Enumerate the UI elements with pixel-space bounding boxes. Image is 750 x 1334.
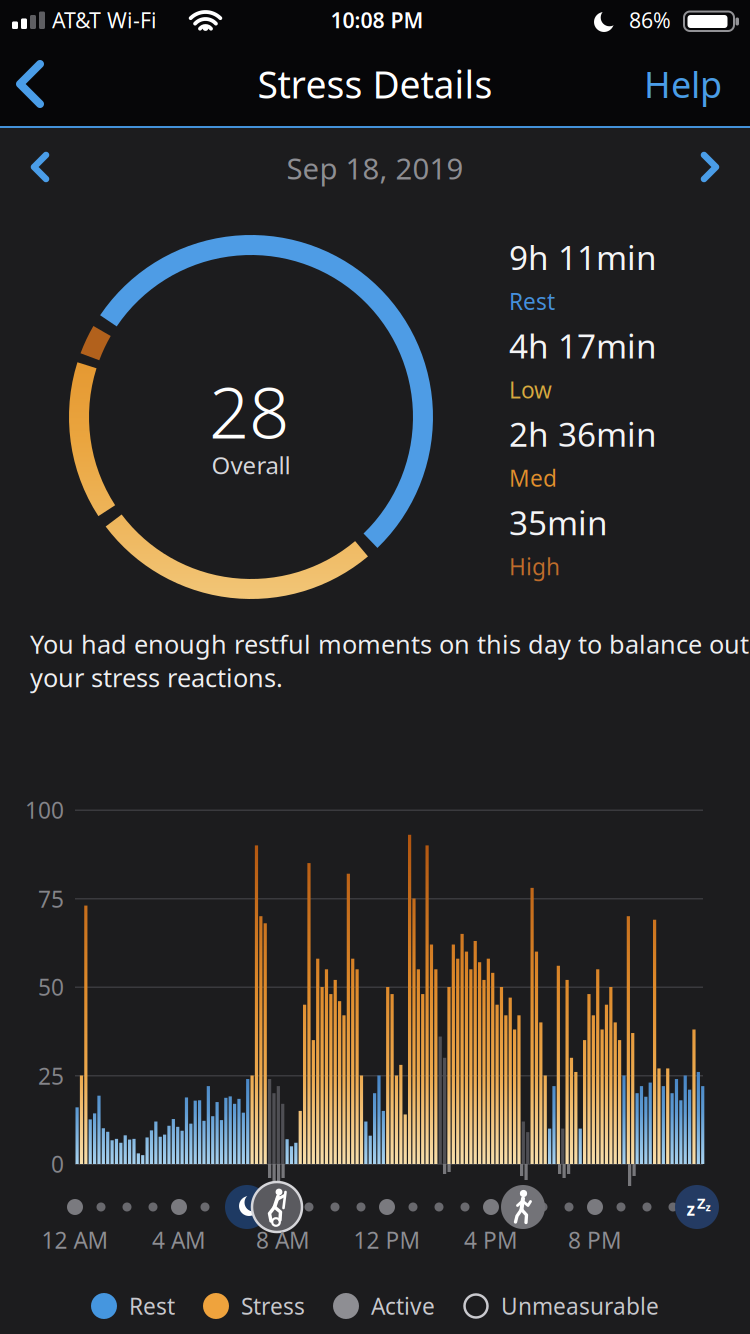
staticText: z xyxy=(705,1200,710,1214)
staticText: Stress xyxy=(241,1291,305,1321)
staticText: 10:08 PM xyxy=(330,6,423,34)
button[interactable]: Back xyxy=(14,56,48,112)
button[interactable]: Next day xyxy=(699,151,719,183)
staticText: 8 PM xyxy=(568,1225,622,1255)
staticText: 2h 36min xyxy=(509,412,657,456)
button[interactable]: Elliptical activity xyxy=(251,1181,303,1233)
staticText: 9h 11min xyxy=(509,235,657,279)
staticText: 4 PM xyxy=(464,1225,518,1255)
staticText: Help xyxy=(644,60,722,108)
staticText: Overall xyxy=(211,449,290,481)
staticText: Unmeasurable xyxy=(501,1291,659,1321)
staticText: Z xyxy=(697,1193,705,1213)
staticText: Active xyxy=(371,1291,435,1321)
staticText: Rest xyxy=(129,1291,175,1321)
button[interactable]: Walking activity xyxy=(500,1184,546,1230)
staticText: Low xyxy=(509,375,552,405)
staticText: 86% xyxy=(629,6,671,34)
staticText: You had enough restful moments on this d… xyxy=(30,627,749,694)
staticText: 4h 17min xyxy=(509,323,657,368)
staticText: Med xyxy=(509,463,557,493)
button[interactable]: Sleep end xyxy=(224,1184,270,1230)
staticText: 75 xyxy=(38,884,64,914)
staticText: Rest xyxy=(509,286,555,316)
staticText: z xyxy=(686,1197,695,1220)
staticText: High xyxy=(509,551,560,581)
staticText: 8 AM xyxy=(256,1225,310,1255)
staticText: 100 xyxy=(25,795,64,825)
button[interactable]: Help xyxy=(644,60,722,108)
staticText: 4 AM xyxy=(152,1225,206,1255)
staticText: Sep 18, 2019 xyxy=(286,148,463,187)
button[interactable]: Previous day xyxy=(31,151,51,183)
staticText: 35min xyxy=(509,500,608,544)
button[interactable]: Sleep xyxy=(674,1184,720,1230)
staticText: Stress Details xyxy=(257,59,492,109)
staticText: 12 AM xyxy=(41,1225,108,1255)
staticText: 28 xyxy=(209,364,289,458)
staticText: 25 xyxy=(38,1061,64,1091)
staticText: 50 xyxy=(38,972,64,1002)
staticText: 0 xyxy=(51,1149,64,1179)
staticText: 12 PM xyxy=(353,1225,420,1255)
staticText: AT&T Wi-Fi xyxy=(52,6,157,34)
